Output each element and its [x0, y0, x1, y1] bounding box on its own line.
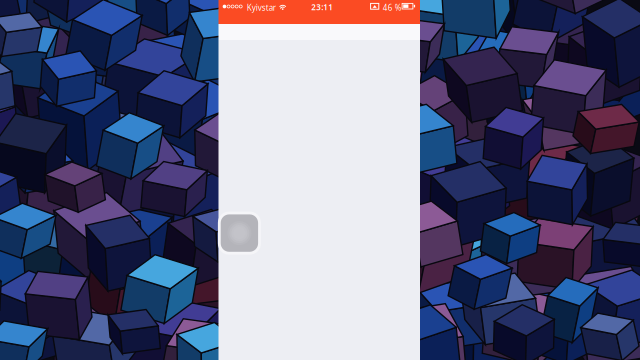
staticText: 23:11 [311, 2, 333, 12]
staticText: Kyivstar [247, 2, 276, 13]
button[interactable]: App icon placeholder [218, 212, 261, 255]
staticText: 46 % [383, 2, 402, 13]
